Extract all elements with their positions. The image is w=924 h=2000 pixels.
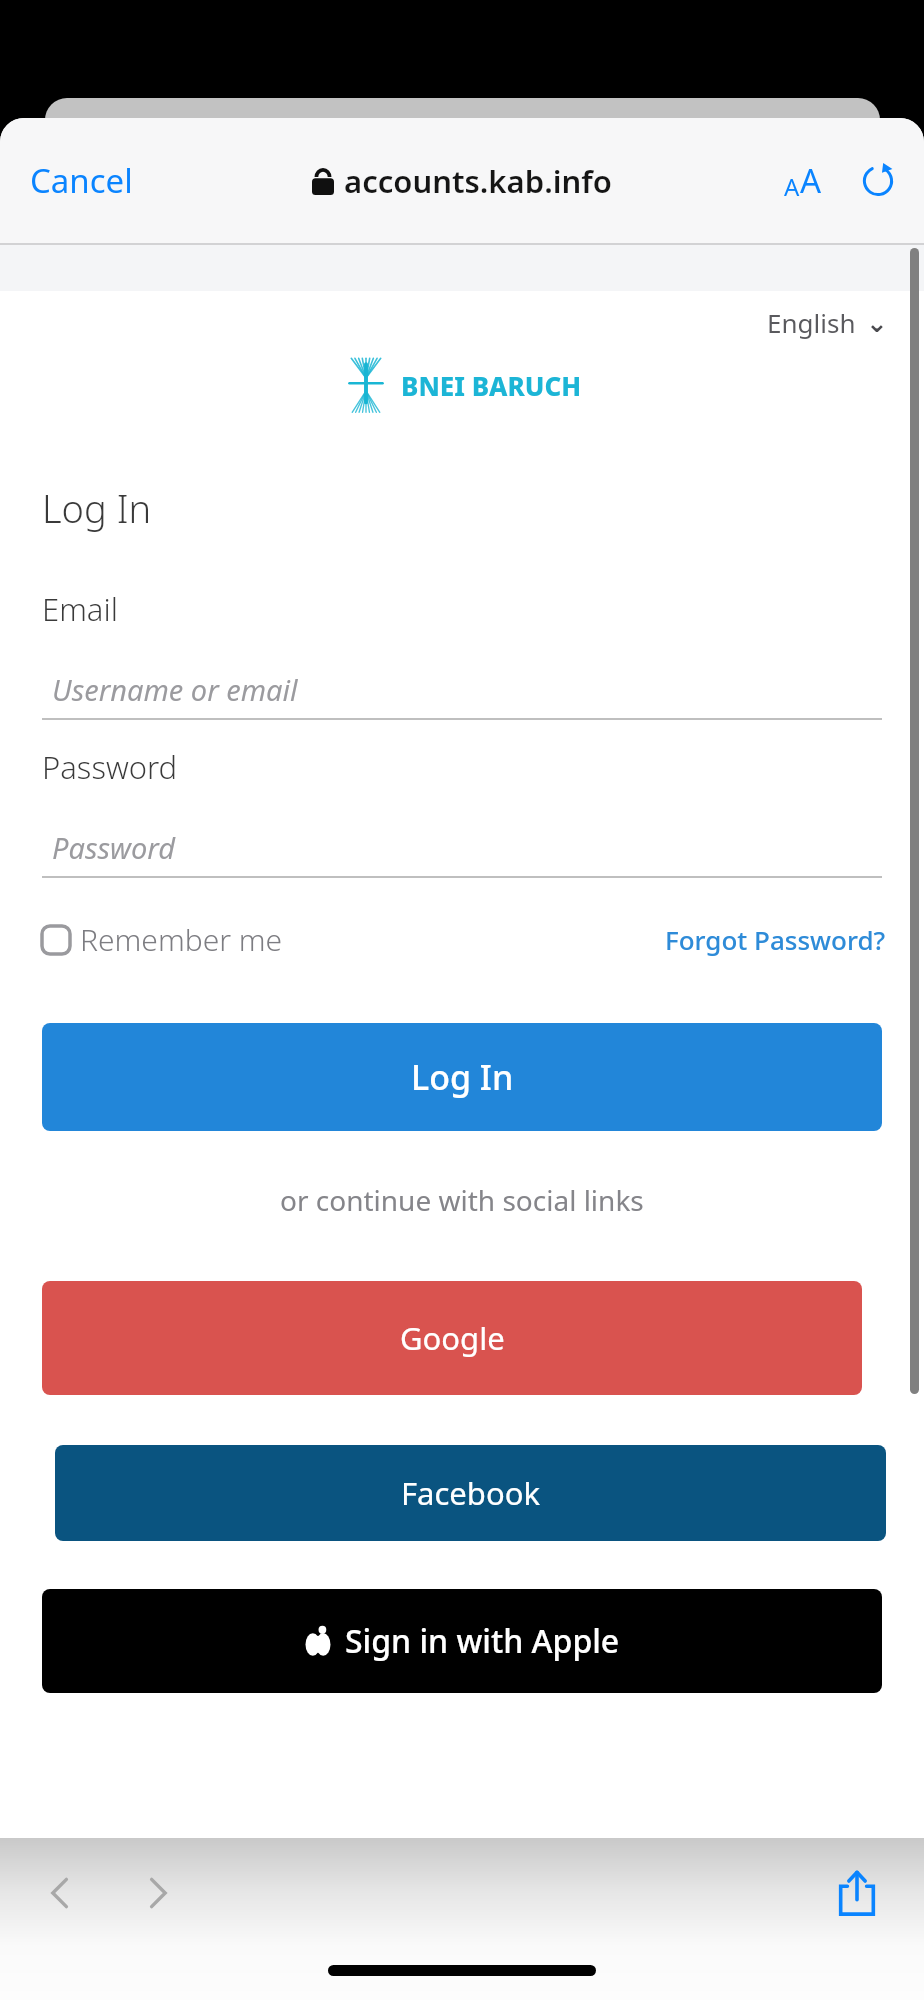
button[interactable]: Remember me: [40, 919, 283, 960]
button[interactable]: Google: [42, 1281, 862, 1395]
staticText: accounts.kab.info: [344, 160, 612, 202]
button[interactable]: Password: [42, 818, 882, 876]
staticText: Cancel: [30, 158, 133, 203]
staticText: Google: [400, 1317, 505, 1359]
button[interactable]: Reload: [852, 155, 904, 207]
button[interactable]: Username or email: [42, 660, 882, 718]
staticText: Forgot Password?: [665, 922, 886, 957]
button[interactable]: Facebook: [55, 1445, 886, 1541]
button[interactable]: Forgot Password?: [661, 918, 890, 961]
staticText: BNEI BARUCH: [401, 368, 582, 403]
staticText: Log In: [411, 1054, 514, 1100]
button[interactable]: Sign in with Apple: [42, 1589, 882, 1693]
staticText: Username or email: [52, 670, 298, 709]
button[interactable]: Text size: [776, 150, 830, 211]
staticText: or continue with social links: [280, 1181, 644, 1219]
staticText: Sign in with Apple: [345, 1619, 620, 1663]
staticText: English: [767, 305, 856, 340]
staticText: Email: [42, 588, 118, 630]
button[interactable]: Share: [820, 1856, 894, 1930]
button[interactable]: Back: [24, 1857, 96, 1929]
staticText: Log In: [42, 482, 152, 534]
staticText: Remember me: [80, 919, 283, 960]
staticText: Facebook: [401, 1472, 540, 1514]
staticText: Password: [52, 828, 176, 867]
button[interactable]: Forward: [122, 1857, 194, 1929]
staticText: A: [784, 170, 800, 203]
staticText: ⌄: [866, 308, 888, 338]
button[interactable]: Cancel: [16, 148, 147, 213]
button[interactable]: Log In: [42, 1023, 882, 1131]
button[interactable]: English: [761, 299, 894, 346]
staticText: Password: [42, 746, 178, 788]
staticText: A: [800, 158, 822, 203]
